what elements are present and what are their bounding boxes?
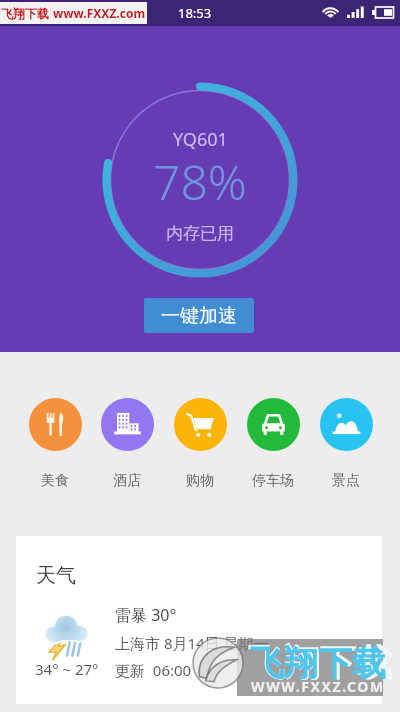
staticText: 34° ~ 27° — [35, 659, 99, 679]
button[interactable]: 酒店 — [93, 398, 161, 490]
staticText: 景点 — [332, 472, 360, 490]
staticText: 更新 06:00 — [115, 660, 192, 680]
staticText: 雷暴 30° — [115, 604, 177, 626]
staticText: 美食 — [41, 472, 69, 490]
staticText: 78% — [153, 149, 247, 214]
staticText: 18:53 — [178, 4, 212, 22]
staticText: www.FXXZ.com — [53, 5, 146, 21]
staticText: 飞翔下载 — [250, 642, 386, 685]
staticText: 飞翔下载 — [248, 640, 392, 685]
staticText: YQ601 — [173, 127, 228, 152]
button[interactable]: 购物 — [166, 398, 234, 490]
staticText: 上海市 8月14日 星期一 — [115, 633, 269, 653]
button[interactable]: 一键加速 — [144, 298, 254, 333]
staticText: 停车场 — [252, 472, 294, 490]
staticText: 天气 — [36, 563, 76, 588]
button[interactable]: 景点 — [312, 398, 380, 490]
staticText: 飞翔下载 — [1, 6, 49, 21]
staticText: 购物 — [186, 472, 214, 490]
other: Status icons — [320, 4, 394, 20]
staticText: 内存已用 — [166, 223, 234, 244]
staticText: 酒店 — [113, 472, 141, 490]
button[interactable]: 美食 — [21, 398, 89, 490]
button[interactable] — [16, 536, 382, 704]
button[interactable]: 停车场 — [239, 398, 307, 490]
staticText: 一键加速 — [161, 304, 237, 328]
staticText: WWW.FXXZ.COM — [251, 677, 385, 696]
